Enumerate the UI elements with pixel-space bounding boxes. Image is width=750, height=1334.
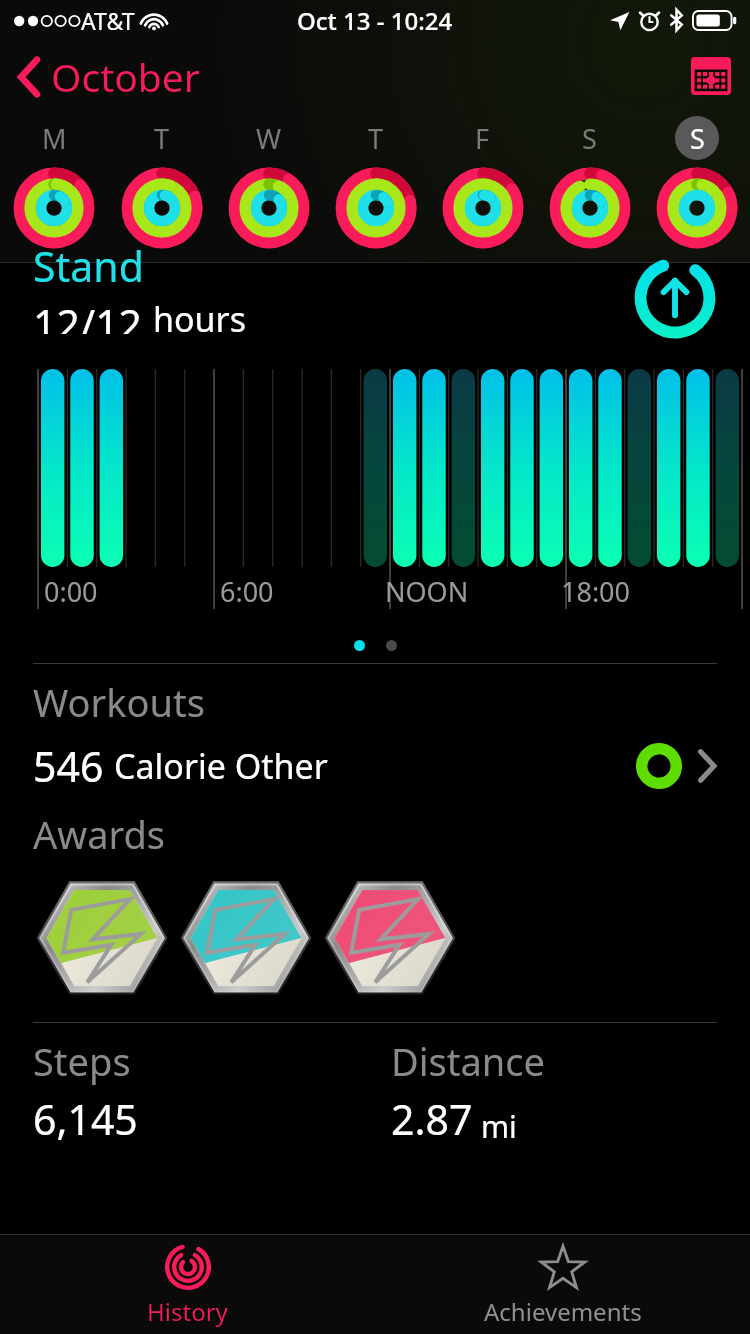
staticText: 2.87 — [391, 1091, 473, 1147]
staticText: S — [690, 120, 705, 157]
staticText: AT&T — [81, 5, 135, 36]
staticText: F — [475, 120, 490, 157]
button[interactable]: T — [108, 116, 215, 160]
staticText: Calorie Other — [114, 743, 328, 789]
button[interactable]: Award badge — [174, 866, 318, 1010]
button[interactable]: Calendar — [686, 51, 736, 101]
button[interactable]: Stand goal reached — [634, 257, 716, 339]
staticText: hours — [153, 296, 246, 334]
staticText: Steps — [33, 1035, 131, 1087]
staticText: October — [51, 50, 200, 103]
staticText: 18:00 — [561, 573, 631, 610]
staticText: History — [147, 1295, 228, 1328]
staticText: M — [42, 120, 67, 157]
staticText: 12/12 — [33, 296, 143, 334]
staticText: Awards — [33, 808, 165, 860]
staticText: 6:00 — [220, 573, 274, 610]
staticText: W — [256, 120, 282, 157]
button[interactable] — [429, 164, 536, 252]
button[interactable]: Award badge — [318, 866, 462, 1010]
button[interactable]: 546 — [0, 734, 750, 798]
staticText: S — [582, 120, 597, 157]
staticText: 546 — [33, 738, 104, 794]
staticText: T — [154, 120, 170, 157]
button[interactable] — [536, 164, 643, 252]
staticText: Stand — [33, 238, 144, 294]
staticText: Distance — [391, 1035, 545, 1087]
button[interactable]: History — [0, 1235, 375, 1334]
button[interactable] — [643, 164, 750, 252]
button[interactable]: M — [0, 116, 108, 160]
staticText: Achievements — [484, 1295, 642, 1328]
button[interactable]: Achievements — [375, 1235, 750, 1334]
button[interactable]: T — [322, 116, 429, 160]
button[interactable] — [0, 164, 108, 252]
button[interactable]: October — [12, 46, 206, 107]
button[interactable] — [215, 164, 322, 252]
staticText: mi — [481, 1106, 517, 1147]
staticText: NOON — [385, 573, 469, 610]
staticText: 0:00 — [44, 573, 98, 610]
staticText: T — [368, 120, 384, 157]
button[interactable] — [108, 164, 215, 252]
button[interactable] — [322, 164, 429, 252]
staticText: Oct 13 - 10:24 — [297, 4, 453, 37]
button[interactable]: S — [536, 116, 643, 160]
button[interactable]: Award badge — [30, 866, 174, 1010]
button[interactable]: F — [429, 116, 536, 160]
button[interactable]: S — [643, 116, 750, 160]
staticText: Workouts — [33, 676, 205, 728]
staticText: 6,145 — [33, 1091, 138, 1147]
button[interactable]: W — [215, 116, 322, 160]
